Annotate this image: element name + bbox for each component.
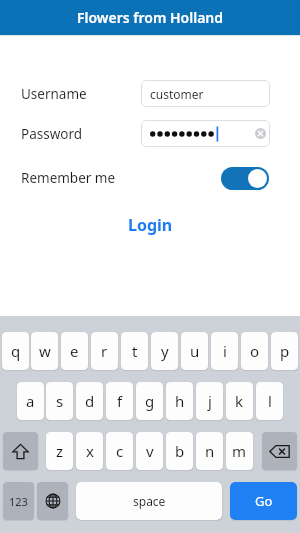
staticText: n [205, 441, 215, 461]
button[interactable]: d [76, 382, 103, 420]
staticText: g [145, 391, 155, 411]
button[interactable]: x [76, 432, 103, 470]
button[interactable]: z [46, 432, 73, 470]
button[interactable]: Login [0, 213, 300, 237]
staticText: Remember me [21, 169, 116, 187]
button[interactable]: l [256, 382, 283, 420]
button[interactable]: Flowers from Holland [0, 0, 300, 35]
button[interactable]: e [61, 332, 88, 370]
button[interactable]: customer [141, 80, 270, 107]
button[interactable]: space [76, 482, 222, 520]
staticText: l [268, 391, 272, 411]
staticText: i [223, 341, 227, 361]
staticText: j [208, 391, 212, 411]
button[interactable]: Remember me [21, 165, 269, 191]
staticText: Username [21, 85, 87, 103]
button[interactable]: y [151, 332, 178, 370]
staticText: x [86, 441, 94, 461]
button[interactable]: h [166, 382, 193, 420]
button[interactable]: i [211, 332, 238, 370]
staticText: t [132, 341, 138, 361]
button[interactable]: c [106, 432, 133, 470]
staticText: s [56, 391, 64, 411]
staticText: b [175, 441, 185, 461]
staticText: customer [150, 86, 204, 102]
staticText: f [117, 391, 123, 411]
staticText: r [101, 341, 108, 361]
staticText: m [232, 441, 247, 461]
staticText: v [146, 441, 154, 461]
staticText: q [11, 341, 21, 361]
staticText: y [161, 341, 169, 361]
button[interactable]: m [226, 432, 253, 470]
button[interactable]: n [196, 432, 223, 470]
button[interactable]: o [241, 332, 268, 370]
staticText: d [85, 391, 95, 411]
staticText: Go [255, 492, 273, 510]
button[interactable]: j [196, 382, 223, 420]
button[interactable]: q [2, 332, 29, 370]
button[interactable]: u [181, 332, 208, 370]
button[interactable]: t [121, 332, 148, 370]
button[interactable]: r [91, 332, 118, 370]
button[interactable]: Clear password [141, 120, 270, 147]
staticText: a [26, 391, 35, 411]
button[interactable]: b [166, 432, 193, 470]
button[interactable]: Backspace [262, 432, 297, 470]
staticText: space [133, 493, 166, 509]
staticText: 123 [9, 494, 28, 509]
staticText: Login [128, 214, 173, 236]
staticText: u [190, 341, 200, 361]
button[interactable]: g [136, 382, 163, 420]
button[interactable]: v [136, 432, 163, 470]
button[interactable]: Numbers [3, 482, 34, 520]
staticText: c [116, 441, 124, 461]
staticText: h [175, 391, 185, 411]
staticText: Flowers from Holland [77, 8, 224, 27]
button[interactable]: w [31, 332, 58, 370]
button[interactable]: Clear password [255, 128, 266, 139]
staticText: k [235, 391, 244, 411]
staticText: Password [21, 125, 83, 143]
staticText: w [39, 341, 51, 361]
staticText: e [70, 341, 79, 361]
staticText: z [56, 441, 64, 461]
staticText: o [250, 341, 260, 361]
button[interactable]: a [17, 382, 44, 420]
button[interactable]: s [46, 382, 73, 420]
button[interactable]: Go [230, 482, 297, 520]
button[interactable]: Change keyboard [37, 482, 68, 520]
button[interactable]: p [271, 332, 298, 370]
button[interactable]: Shift [3, 432, 38, 470]
button[interactable]: k [226, 382, 253, 420]
staticText: p [280, 341, 290, 361]
button[interactable]: f [106, 382, 133, 420]
